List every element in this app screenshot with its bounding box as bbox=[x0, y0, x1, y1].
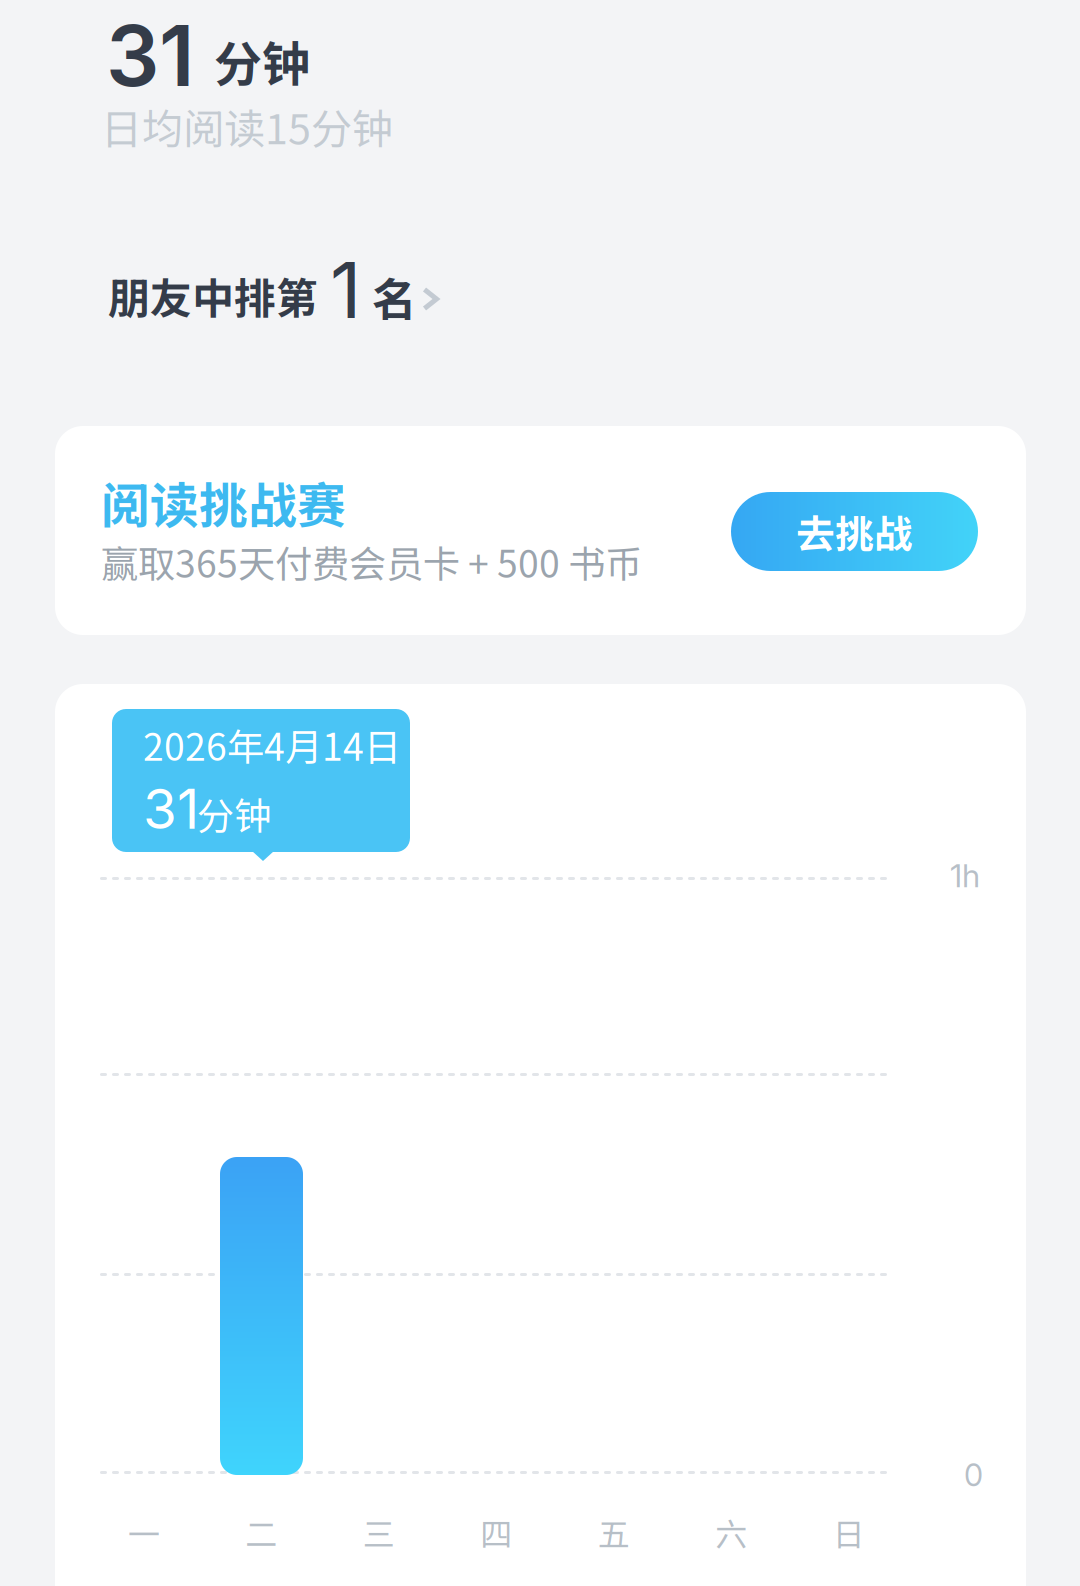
staticText: 31 bbox=[143, 776, 199, 842]
staticText: 赢取365天付费会员卡 + 500 书币 bbox=[101, 534, 642, 589]
staticText: 分钟 bbox=[197, 786, 271, 841]
staticText: 三 bbox=[363, 1509, 395, 1555]
staticText: 1 bbox=[330, 243, 361, 337]
button[interactable]: 去挑战 bbox=[731, 492, 978, 571]
staticText: 日 bbox=[833, 1509, 865, 1555]
staticText: 2026年4月14日 bbox=[143, 717, 401, 772]
staticText: 日均阅读15分钟 bbox=[101, 96, 393, 156]
staticText: 分钟 bbox=[214, 26, 310, 96]
staticText: 五 bbox=[598, 1509, 630, 1555]
staticText: 名 bbox=[372, 264, 417, 329]
staticText: 阅读挑战赛 bbox=[101, 467, 346, 537]
button[interactable]: 周二 31 分钟 bbox=[220, 1157, 303, 1475]
button[interactable]: 朋友中排第 bbox=[108, 254, 464, 330]
staticText: 二 bbox=[245, 1509, 277, 1555]
staticText: 去挑战 bbox=[796, 503, 913, 559]
staticText: 六 bbox=[715, 1509, 747, 1555]
staticText: 一 bbox=[128, 1509, 160, 1555]
staticText: 四 bbox=[480, 1509, 512, 1555]
staticText: 0 bbox=[964, 1456, 983, 1494]
staticText: 朋友中排第 bbox=[108, 265, 318, 326]
staticText: 31 bbox=[106, 4, 195, 106]
staticText: 1h bbox=[950, 856, 980, 895]
